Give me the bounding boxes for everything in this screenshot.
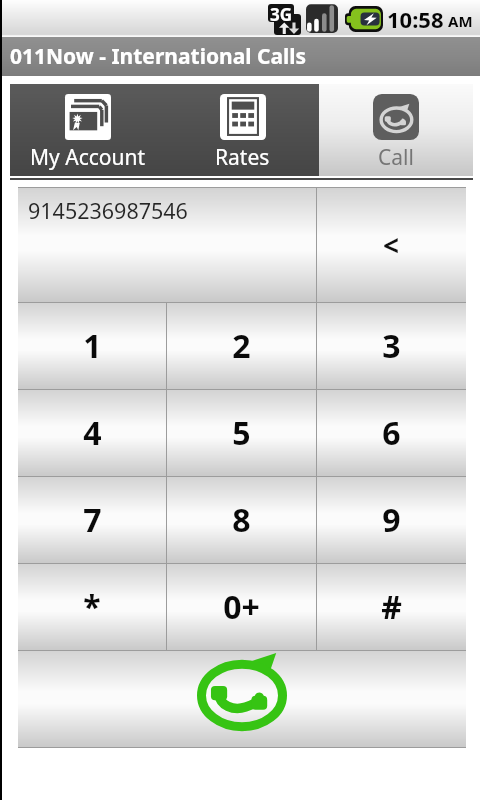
staticText: Rates <box>215 143 270 172</box>
button[interactable]: Call <box>319 84 473 176</box>
staticText: 7 <box>83 498 102 542</box>
staticText: < <box>383 226 400 264</box>
staticText: * <box>83 585 101 629</box>
staticText: 2 <box>232 324 251 368</box>
button[interactable]: Rates <box>165 84 319 176</box>
button[interactable]: My Account <box>10 84 165 176</box>
staticText: 10:58 <box>387 4 444 34</box>
button[interactable]: 9145236987546 <box>18 188 316 302</box>
staticText: 011Now - International Calls <box>10 42 307 71</box>
button[interactable]: * <box>18 564 166 650</box>
staticText: 3 <box>382 324 401 368</box>
staticText: 6 <box>382 411 401 455</box>
staticText: # <box>381 585 402 629</box>
button[interactable]: 5 <box>167 390 316 476</box>
button[interactable]: 4 <box>18 390 166 476</box>
button[interactable]: # <box>317 564 466 650</box>
staticText: 3G <box>270 3 293 21</box>
button[interactable]: 7 <box>18 477 166 563</box>
staticText: 9145236987546 <box>28 196 188 225</box>
button[interactable]: Backspace <box>317 188 466 302</box>
staticText: 5 <box>232 411 251 455</box>
staticText: Call <box>378 143 414 172</box>
staticText: 0+ <box>223 585 260 629</box>
staticText: 4 <box>83 411 102 455</box>
button[interactable]: 0+ <box>167 564 316 650</box>
staticText: 1 <box>83 324 102 368</box>
staticText: 9 <box>382 498 401 542</box>
staticText: 8 <box>232 498 251 542</box>
staticText: AM <box>448 11 473 31</box>
button[interactable]: Call <box>18 651 466 747</box>
staticText: My Account <box>30 143 146 172</box>
button[interactable]: 8 <box>167 477 316 563</box>
button[interactable]: 9 <box>317 477 466 563</box>
button[interactable]: 3 <box>317 303 466 389</box>
button[interactable]: 6 <box>317 390 466 476</box>
button[interactable]: 2 <box>167 303 316 389</box>
button[interactable]: 1 <box>18 303 166 389</box>
